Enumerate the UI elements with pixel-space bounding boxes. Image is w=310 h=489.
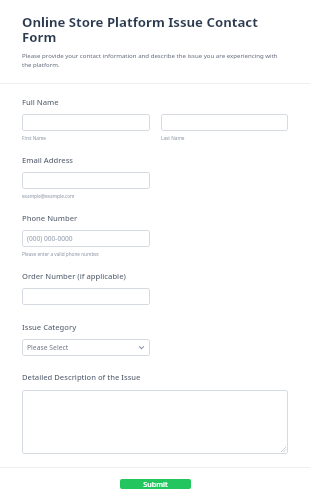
button[interactable]: (000) 000-0000 <box>22 230 150 247</box>
staticText: Please Select <box>27 343 69 352</box>
button[interactable]: Submit <box>120 479 191 489</box>
staticText: First Name <box>22 135 46 141</box>
staticText: Submit <box>143 479 168 489</box>
button[interactable] <box>22 114 150 131</box>
staticText: example@example.com <box>22 193 75 199</box>
button[interactable]: Please Select <box>22 339 150 356</box>
staticText: Full Name <box>22 97 59 107</box>
button[interactable] <box>161 114 288 131</box>
staticText: Order Number (if applicable) <box>22 271 126 281</box>
staticText: Phone Number <box>22 213 78 223</box>
button[interactable] <box>22 288 150 305</box>
button[interactable] <box>22 172 150 189</box>
staticText: (000) 000-0000 <box>27 234 73 243</box>
staticText: Email Address <box>22 155 74 165</box>
staticText: Please provide your contact information … <box>22 51 288 69</box>
button[interactable] <box>22 390 288 454</box>
staticText: Last Name <box>161 135 185 141</box>
staticText: Detailed Description of the Issue <box>22 372 141 382</box>
other: Open category list <box>138 344 145 351</box>
staticText: Please enter a valid phone number. <box>22 251 100 257</box>
staticText: Issue Category <box>22 322 77 332</box>
staticText: Online Store Platform Issue Contact Form <box>22 13 288 46</box>
